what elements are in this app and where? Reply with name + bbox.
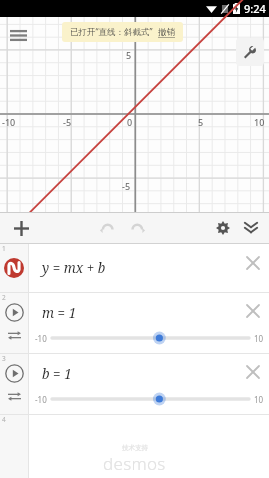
staticText: 4	[2, 415, 6, 424]
staticText: 3	[2, 354, 6, 363]
staticText: 撤销	[158, 27, 175, 38]
staticText: b = 1	[42, 365, 72, 383]
staticText: -10	[35, 333, 47, 344]
staticText: -10	[2, 116, 16, 128]
staticText: 2	[2, 293, 6, 302]
button[interactable]: Settings	[209, 213, 236, 243]
button[interactable]: Undo	[92, 213, 120, 243]
button[interactable]: Redo	[124, 213, 152, 243]
button[interactable]: Slider options	[6, 388, 23, 405]
button[interactable]: Play m animation	[4, 302, 24, 322]
button[interactable]: Play b animation	[4, 363, 24, 383]
button[interactable]: Delete	[242, 300, 264, 322]
button[interactable]: Menu	[2, 19, 34, 51]
staticText: 已打开“直线：斜截式”	[70, 26, 153, 38]
staticText: 10	[254, 394, 264, 405]
staticText: 技术支持	[122, 444, 148, 452]
staticText: 1	[2, 244, 6, 253]
staticText: -10	[35, 394, 47, 405]
button[interactable]: Slider m	[52, 330, 249, 346]
button[interactable]: 已打开“直线：斜截式”	[70, 26, 175, 38]
staticText: 0	[127, 116, 133, 128]
staticText: 9:24	[244, 1, 266, 16]
button[interactable]: 2	[0, 293, 269, 353]
staticText: 5	[126, 49, 132, 61]
staticText: m = 1	[42, 304, 77, 322]
staticText: y = mx + b	[42, 259, 106, 277]
staticText: 10	[254, 333, 264, 344]
button[interactable]: 4	[0, 415, 269, 478]
staticText: -5	[122, 180, 131, 192]
staticText: 5	[198, 116, 204, 128]
button[interactable]: Add expression	[2, 213, 40, 243]
button[interactable]: Slider b	[52, 391, 249, 407]
staticText: -5	[63, 116, 72, 128]
button[interactable]: Toggle graph visibility	[4, 258, 24, 278]
button[interactable]: 3	[0, 354, 269, 414]
button[interactable]: Slider options	[6, 327, 23, 344]
button[interactable]: Graph tools	[236, 38, 264, 66]
button[interactable]: Delete	[242, 252, 264, 274]
button[interactable]: Collapse	[236, 213, 266, 243]
button[interactable]: Delete	[242, 361, 264, 383]
staticText: desmos	[103, 452, 166, 475]
button[interactable]: 1	[0, 244, 269, 292]
staticText: 10	[254, 116, 265, 128]
